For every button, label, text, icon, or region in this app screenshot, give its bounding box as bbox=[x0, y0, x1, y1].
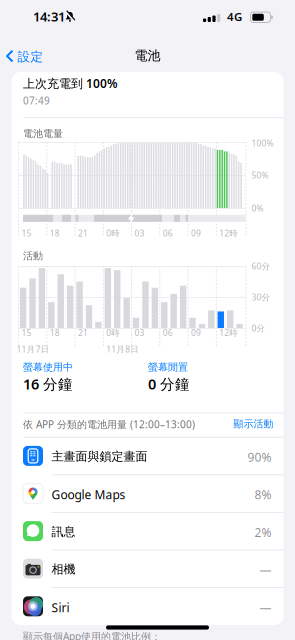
staticText: 60分 bbox=[251, 260, 270, 272]
staticText: 03 bbox=[135, 327, 145, 338]
staticText: 09 bbox=[191, 327, 201, 338]
staticText: 螢幕使用中 bbox=[23, 361, 73, 373]
button[interactable]: 訊息 bbox=[11, 513, 283, 550]
staticText: 100% bbox=[251, 137, 273, 149]
staticText: 0分 bbox=[251, 322, 265, 334]
staticText: 06 bbox=[163, 327, 173, 338]
staticText: 09 bbox=[191, 227, 201, 239]
staticText: 螢幕閒置 bbox=[148, 361, 188, 373]
staticText: 電池 bbox=[134, 47, 160, 64]
staticText: 03 bbox=[135, 227, 145, 239]
staticText: 顯示每個App使用的電池比例： bbox=[23, 629, 161, 640]
staticText: 訊息 bbox=[51, 524, 75, 539]
staticText: 18 bbox=[50, 327, 60, 338]
staticText: 18 bbox=[50, 227, 60, 239]
staticText: Siri bbox=[51, 599, 69, 616]
staticText: 4G bbox=[227, 9, 242, 24]
staticText: 50% bbox=[251, 169, 268, 181]
staticText: 主畫面與鎖定畫面 bbox=[51, 449, 147, 464]
staticText: 11月8日 bbox=[106, 343, 139, 355]
staticText: 15 bbox=[22, 227, 32, 239]
staticText: 相機 bbox=[51, 562, 75, 577]
staticText: 16 分鐘 bbox=[23, 374, 73, 394]
staticText: 設定 bbox=[17, 49, 43, 65]
staticText: 0時 bbox=[106, 327, 120, 338]
staticText: 顯示活動 bbox=[233, 417, 273, 430]
staticText: 06 bbox=[163, 227, 173, 239]
staticText: 0% bbox=[251, 202, 263, 214]
staticText: 21 bbox=[78, 227, 88, 239]
staticText: 0 分鐘 bbox=[148, 374, 190, 394]
button[interactable]: 顯示活動 bbox=[233, 417, 273, 430]
staticText: Google Maps bbox=[51, 486, 125, 503]
staticText: 21 bbox=[78, 327, 88, 338]
button[interactable]: Siri bbox=[11, 588, 283, 625]
staticText: 依 APP 分類的電池用量 (12:00–13:00) bbox=[23, 417, 195, 431]
staticText: — bbox=[259, 599, 271, 616]
staticText: 8% bbox=[254, 486, 271, 503]
staticText: 07:49 bbox=[23, 94, 50, 107]
staticText: 11月7日 bbox=[16, 343, 49, 355]
staticText: 15 bbox=[22, 327, 32, 338]
staticText: 活動 bbox=[23, 249, 43, 262]
button[interactable]: 相機 bbox=[11, 550, 283, 587]
staticText: 2% bbox=[254, 524, 271, 540]
button[interactable]: Google Maps bbox=[11, 475, 283, 512]
staticText: 30分 bbox=[251, 291, 270, 303]
staticText: 14:31 bbox=[33, 8, 65, 25]
staticText: 0時 bbox=[106, 227, 120, 239]
button[interactable]: 返回設定 bbox=[1, 44, 59, 68]
staticText: 90% bbox=[247, 449, 271, 465]
staticText: 12時 bbox=[219, 227, 238, 239]
staticText: — bbox=[259, 562, 271, 578]
button[interactable]: 主畫面與鎖定畫面 bbox=[11, 438, 283, 475]
staticText: 電池電量 bbox=[23, 127, 63, 140]
staticText: 12時 bbox=[219, 327, 238, 338]
staticText: 上次充電到 100% bbox=[23, 75, 118, 91]
